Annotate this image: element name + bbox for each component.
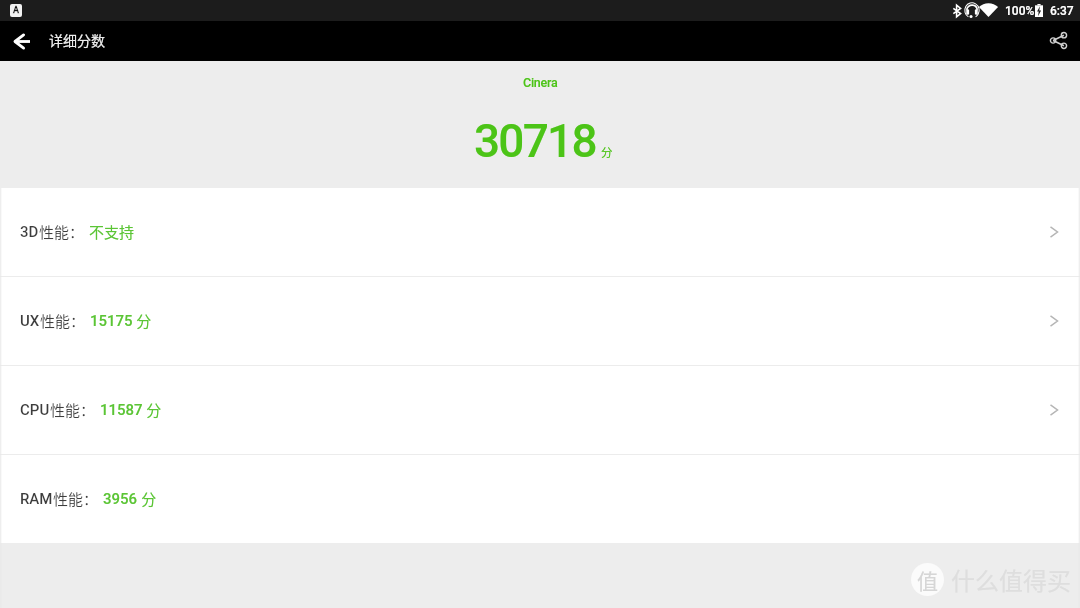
button[interactable]: UX — [0, 277, 1080, 365]
staticText: 分 — [143, 399, 162, 421]
staticText: 性能： — [50, 399, 96, 421]
button[interactable]: CPU — [0, 366, 1080, 454]
staticText: 分 — [133, 310, 152, 332]
staticText: 性能： — [39, 221, 85, 243]
button[interactable]: RAM — [0, 455, 1080, 543]
staticText: 什么值得买 — [951, 562, 1071, 597]
staticText: 性能： — [53, 488, 99, 510]
staticText: 详细分数 — [49, 30, 105, 50]
staticText: 不支持 — [89, 221, 135, 243]
staticText: 6:37 — [1050, 4, 1074, 18]
staticText: A — [13, 5, 19, 16]
staticText: 30718 — [474, 114, 596, 168]
staticText: 15175 — [90, 312, 133, 330]
staticText: 3D — [20, 223, 39, 241]
staticText: UX — [20, 312, 40, 330]
staticText: 值 — [917, 565, 938, 595]
staticText: 分 — [601, 144, 613, 161]
staticText: RAM — [20, 490, 53, 508]
button[interactable]: Back — [0, 21, 43, 61]
staticText: CPU — [20, 401, 50, 419]
staticText: 100% — [1005, 4, 1035, 18]
staticText: 3956 — [103, 490, 138, 508]
staticText: 分 — [138, 488, 157, 510]
staticText: 性能： — [40, 310, 86, 332]
button[interactable]: 3D — [0, 188, 1080, 276]
staticText: 11587 — [100, 401, 143, 419]
staticText: Cinera — [523, 75, 558, 90]
button[interactable]: Share — [1036, 20, 1080, 60]
